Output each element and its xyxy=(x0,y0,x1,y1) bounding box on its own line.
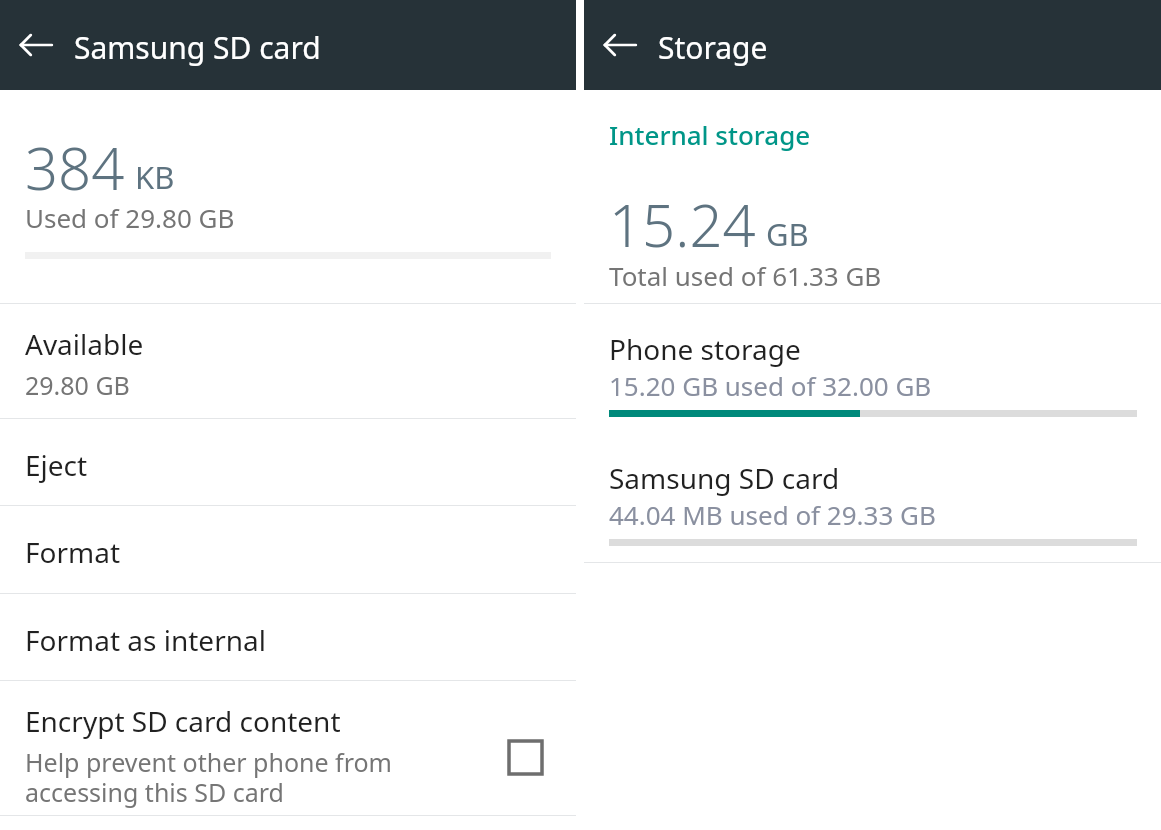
staticText: Phone storage xyxy=(609,330,801,368)
button[interactable]: Encrypt SD card content xyxy=(0,681,576,815)
staticText: KB xyxy=(135,156,175,198)
staticText: Samsung SD card xyxy=(74,27,321,68)
staticText: Used of 29.80 GB xyxy=(25,200,235,235)
button[interactable]: Navigate up xyxy=(12,24,60,66)
staticText: 384 xyxy=(25,128,125,207)
staticText: 15.20 GB used of 32.00 GB xyxy=(609,368,932,403)
staticText: Help prevent other phone from accessing … xyxy=(25,745,465,810)
staticText: Eject xyxy=(25,446,88,484)
staticText: Format xyxy=(25,533,121,571)
staticText: 44.04 MB used of 29.33 GB xyxy=(609,497,936,532)
staticText: Available xyxy=(25,325,144,363)
button[interactable]: Samsung SD card xyxy=(584,433,1161,562)
button[interactable]: Eject xyxy=(0,419,576,505)
staticText: 15.24 xyxy=(609,185,756,264)
button[interactable]: Phone storage xyxy=(584,304,1161,433)
button[interactable]: Available xyxy=(0,304,576,418)
staticText: Samsung SD card xyxy=(609,459,840,497)
button[interactable]: Navigate up xyxy=(596,24,644,66)
staticText: GB xyxy=(766,213,809,255)
staticText: Format as internal xyxy=(25,621,266,659)
button[interactable]: Format xyxy=(0,506,576,593)
staticText: 29.80 GB xyxy=(25,368,130,402)
staticText: Total used of 61.33 GB xyxy=(609,258,882,293)
button[interactable]: Format as internal xyxy=(0,594,576,680)
staticText: Internal storage xyxy=(609,117,811,152)
staticText: Encrypt SD card content xyxy=(25,702,341,740)
staticText: Storage xyxy=(658,27,768,68)
